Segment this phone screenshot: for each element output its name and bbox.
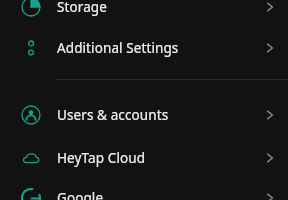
staticText: Google xyxy=(57,189,104,200)
other: Additional Settings xyxy=(264,42,276,54)
staticText: Additional Settings xyxy=(57,39,179,57)
other: HeyTap Cloud xyxy=(264,152,276,164)
staticText: Storage xyxy=(57,0,107,16)
staticText: HeyTap Cloud xyxy=(57,149,146,167)
other: Users and accounts xyxy=(264,109,276,121)
button[interactable]: Additional Settings xyxy=(0,26,288,69)
button[interactable]: Storage xyxy=(0,0,288,28)
button[interactable]: HeyTap Cloud xyxy=(0,136,288,179)
other: Storage xyxy=(264,1,276,13)
button[interactable]: Google xyxy=(0,176,288,200)
other: Google xyxy=(264,192,276,200)
staticText: Users & accounts xyxy=(57,106,169,124)
button[interactable]: Users & accounts xyxy=(0,93,288,136)
